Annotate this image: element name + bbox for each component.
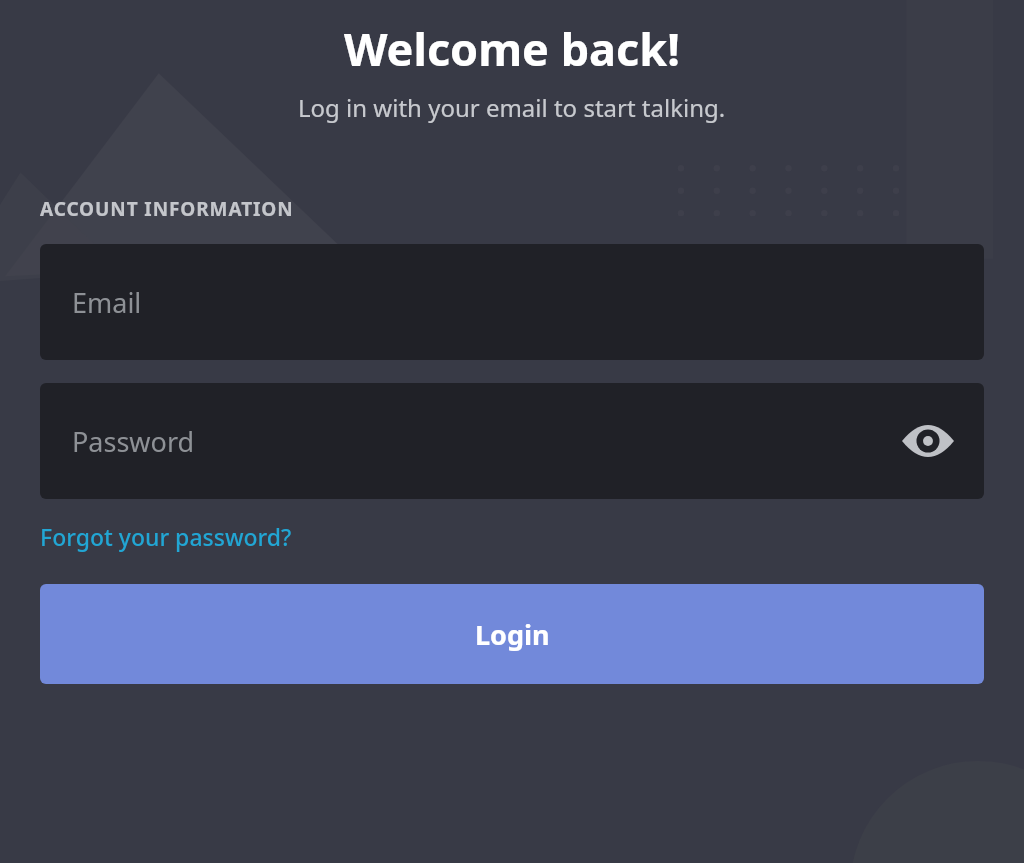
staticText: Welcome back! bbox=[344, 18, 680, 74]
staticText: Email bbox=[72, 284, 142, 321]
staticText: Log in with your email to start talking. bbox=[298, 91, 726, 124]
button[interactable]: Password bbox=[40, 383, 984, 499]
button[interactable]: Forgot your password? bbox=[40, 521, 292, 552]
staticText: Password bbox=[72, 423, 195, 460]
button[interactable]: Show password bbox=[900, 413, 956, 469]
button[interactable]: Login bbox=[40, 584, 984, 684]
button[interactable]: Email bbox=[40, 244, 984, 360]
staticText: Forgot your password? bbox=[40, 521, 292, 552]
staticText: ACCOUNT INFORMATION bbox=[40, 196, 294, 222]
staticText: Login bbox=[475, 616, 550, 653]
